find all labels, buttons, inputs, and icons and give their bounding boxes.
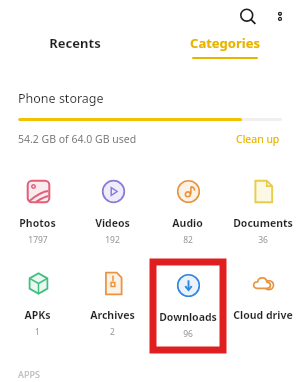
staticText: Categories — [190, 34, 260, 52]
staticText: 96 — [183, 328, 193, 340]
button[interactable]: APKs — [0, 262, 75, 342]
staticText: Documents — [233, 216, 293, 230]
staticText: Cloud drive — [233, 308, 293, 322]
staticText: 2 — [110, 326, 115, 338]
staticText: Photos — [19, 216, 56, 230]
staticText: Clean up — [236, 132, 280, 146]
staticText: Archives — [90, 308, 135, 322]
staticText: Videos — [95, 216, 130, 230]
staticText: 82 — [183, 234, 193, 246]
button[interactable]: Photos — [0, 170, 75, 250]
staticText: 54.2 GB of 64.0 GB used — [18, 132, 137, 146]
staticText: Downloads — [159, 310, 217, 324]
staticText: APKs — [24, 308, 51, 322]
button[interactable]: Documents — [225, 170, 300, 250]
button[interactable]: Downloads — [153, 264, 223, 344]
staticText: Recents — [49, 34, 101, 52]
button[interactable]: Categories — [150, 34, 300, 59]
staticText: 192 — [105, 234, 120, 246]
button[interactable]: Recents — [0, 34, 150, 57]
staticText: Audio — [172, 216, 203, 230]
button[interactable]: Cloud drive — [225, 262, 300, 342]
button[interactable]: Audio — [150, 170, 225, 250]
button[interactable]: Search — [232, 1, 264, 33]
staticText: 1797 — [28, 234, 48, 246]
staticText: APPS — [18, 368, 40, 380]
button[interactable]: Videos — [75, 170, 150, 250]
staticText: 36 — [258, 234, 268, 246]
button[interactable]: More options — [264, 1, 296, 33]
button[interactable]: Clean up — [234, 130, 282, 148]
staticText: 1 — [35, 326, 40, 338]
staticText: Phone storage — [18, 90, 104, 107]
button[interactable]: Archives — [75, 262, 150, 342]
